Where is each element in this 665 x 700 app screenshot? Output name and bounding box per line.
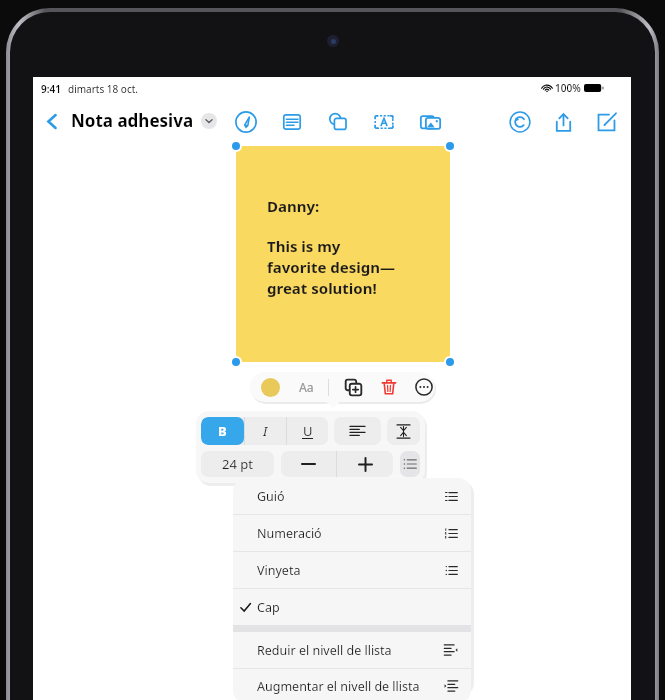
button[interactable]: Duplicate [341, 375, 365, 399]
button[interactable]: Augmentar el nivell de llista [233, 669, 471, 700]
staticText: U [303, 422, 313, 440]
button[interactable]: Line spacing [387, 417, 420, 445]
button[interactable]: Italic [245, 417, 286, 445]
button[interactable]: Undo [505, 107, 535, 137]
button[interactable]: Text box [369, 107, 399, 137]
button[interactable]: Aa [293, 374, 319, 400]
button[interactable]: Decrease size [281, 451, 336, 477]
button[interactable]: More options [413, 375, 435, 399]
button[interactable]: Shapes [323, 107, 353, 137]
staticText: Numeració [257, 525, 431, 542]
staticText: Augmentar el nivell de llista [257, 678, 431, 695]
button[interactable]: Markup pen [231, 107, 261, 137]
staticText: Reduir el nivell de llista [257, 642, 431, 659]
staticText: Danny: [267, 196, 320, 216]
button[interactable]: Delete [377, 375, 401, 399]
staticText: I [263, 422, 268, 440]
button[interactable]: Back [39, 108, 65, 134]
staticText: B [218, 422, 227, 440]
staticText: Vinyeta [257, 562, 431, 579]
button[interactable]: Danny: [236, 146, 450, 362]
button[interactable]: Compose [591, 107, 621, 137]
staticText: Aa [299, 379, 314, 395]
staticText: Guió [257, 488, 431, 505]
staticText: Nota adhesiva [71, 109, 194, 132]
staticText: 100% [555, 81, 581, 95]
button[interactable]: Numeració [233, 515, 471, 551]
button[interactable]: Bold [201, 417, 244, 445]
button[interactable]: Note colour [261, 378, 280, 397]
staticText: This is my favorite design— great soluti… [267, 236, 395, 299]
button[interactable]: Lists [400, 451, 420, 477]
staticText: 24 pt [222, 455, 253, 473]
button[interactable]: 24 pt [201, 451, 274, 477]
button[interactable]: Media [415, 107, 445, 137]
button[interactable]: Reduir el nivell de llista [233, 632, 471, 668]
button[interactable]: Share [548, 107, 578, 137]
button[interactable]: Alignment [334, 417, 381, 445]
button[interactable]: Guió [233, 478, 471, 514]
staticText: dimarts 18 oct. [68, 82, 138, 96]
button[interactable]: Document [277, 107, 307, 137]
button[interactable]: Vinyeta [233, 552, 471, 588]
button[interactable]: Nota adhesiva [71, 109, 217, 132]
staticText: Cap [257, 599, 431, 616]
staticText: 9:41 [41, 82, 61, 96]
button[interactable]: Underline [287, 417, 328, 445]
button[interactable]: Cap [233, 589, 471, 625]
button[interactable]: Increase size [337, 451, 393, 477]
